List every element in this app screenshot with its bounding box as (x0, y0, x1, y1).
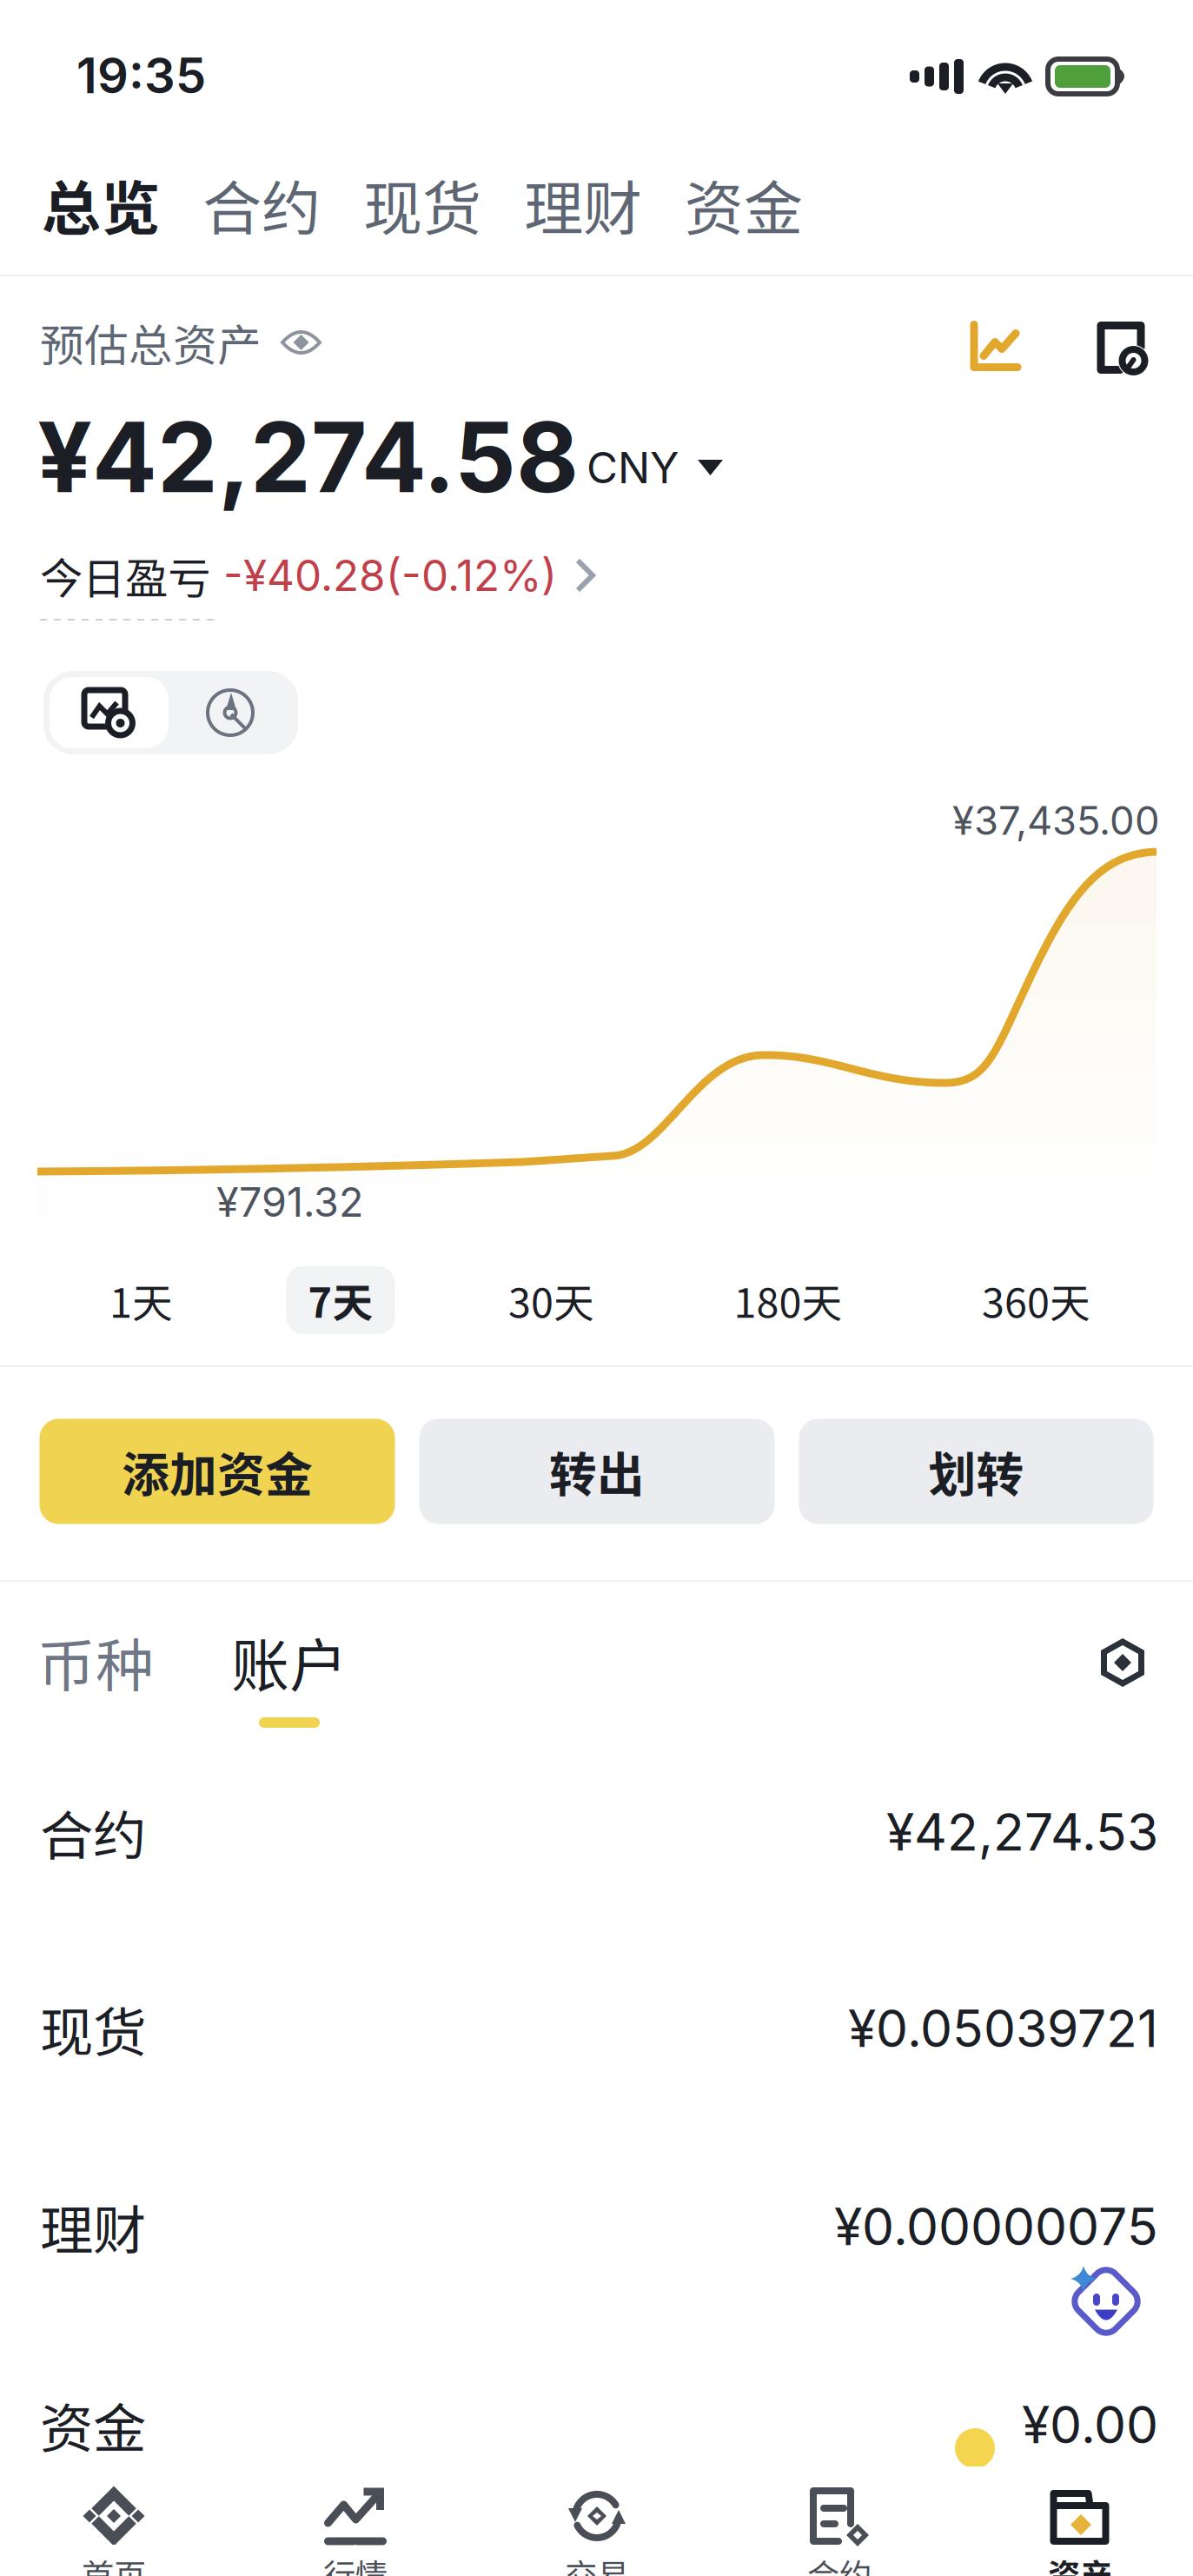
staticText: 19:35 (76, 46, 206, 105)
button[interactable]: 账户 (231, 1620, 348, 1704)
staticText: 现货 (40, 1990, 146, 2067)
button[interactable]: 筛选 (1100, 1638, 1145, 1687)
staticText: ¥791.32 (216, 1177, 363, 1227)
button[interactable]: 交易 (478, 2487, 716, 2576)
staticText: 合约 (40, 1793, 146, 1871)
staticText: ¥0.05039721 (848, 1998, 1158, 2059)
button[interactable]: 360天 (956, 1259, 1117, 1342)
staticText: 理财 (40, 2188, 146, 2265)
staticText: 资金 (685, 161, 803, 247)
button[interactable]: 合约 (720, 2487, 958, 2576)
button[interactable]: 今日盈亏 (0, 545, 1193, 606)
staticText: 今日盈亏 (40, 544, 210, 606)
staticText: 资产 (1048, 2550, 1112, 2576)
button[interactable]: 现货 (363, 161, 481, 247)
button[interactable]: 理财 (524, 161, 642, 247)
button[interactable]: 划转 (799, 1419, 1153, 1524)
button[interactable]: 资产 (961, 2487, 1193, 2576)
staticText: 7天 (308, 1271, 373, 1330)
staticText: 合约 (202, 161, 321, 247)
staticText: 划转 (928, 1437, 1024, 1506)
button[interactable]: 1天 (83, 1259, 199, 1342)
staticText: 交易 (565, 2550, 629, 2576)
button[interactable]: 资金 (0, 2326, 1193, 2523)
button[interactable]: 首页 (0, 2487, 233, 2576)
staticText: 总览 (42, 161, 160, 247)
staticText: CNY (587, 442, 679, 494)
button[interactable]: 历史记录 (1022, 321, 1150, 374)
button[interactable]: 转出 (419, 1419, 775, 1524)
staticText: 转出 (549, 1437, 645, 1506)
staticText: 现货 (363, 161, 481, 247)
staticText: ¥42,274.53 (886, 1801, 1158, 1863)
staticText: 币种 (37, 1620, 154, 1704)
button[interactable]: 资产分布 (169, 677, 292, 748)
button[interactable]: 走势图 (50, 677, 169, 748)
staticText: ¥42,274.58 (37, 399, 579, 515)
button[interactable]: 添加资金 (40, 1419, 395, 1524)
staticText: 360天 (982, 1271, 1090, 1330)
staticText: ¥0.00000075 (834, 2196, 1158, 2257)
button[interactable]: 180天 (708, 1259, 868, 1342)
button[interactable]: 合约 (202, 161, 321, 247)
button[interactable]: 总览 (42, 161, 160, 247)
staticText: ¥0.00 (1022, 2394, 1158, 2456)
button[interactable]: 理财 (0, 2128, 1193, 2325)
button[interactable]: 资产分析 (969, 321, 1022, 374)
staticText: 180天 (734, 1271, 842, 1330)
staticText: 首页 (82, 2550, 146, 2576)
button[interactable]: 智能客服 (1066, 2261, 1146, 2341)
staticText: 预估总资产 (40, 311, 262, 374)
staticText: 行情 (323, 2550, 388, 2576)
button[interactable]: 资金 (685, 161, 803, 247)
button[interactable]: 隐藏余额 (262, 330, 321, 355)
button[interactable]: 7天 (286, 1266, 395, 1334)
staticText: 1天 (109, 1271, 173, 1330)
button[interactable]: 现货 (0, 1930, 1193, 2127)
staticText: 理财 (524, 161, 642, 247)
button[interactable]: CNY (579, 421, 723, 494)
button[interactable]: 30天 (482, 1259, 620, 1342)
button[interactable]: 币种 (37, 1620, 154, 1704)
staticText: -¥40.28(-0.12%) (223, 549, 557, 601)
staticText: 添加资金 (122, 1437, 313, 1506)
staticText: 30天 (508, 1271, 594, 1330)
staticText: 合约 (807, 2550, 872, 2576)
button[interactable]: 合约 (0, 1733, 1193, 1931)
staticText: 账户 (231, 1620, 348, 1704)
staticText: 资金 (40, 2386, 146, 2463)
button[interactable]: 行情 (236, 2487, 474, 2576)
staticText: ¥37,435.00 (952, 797, 1160, 844)
